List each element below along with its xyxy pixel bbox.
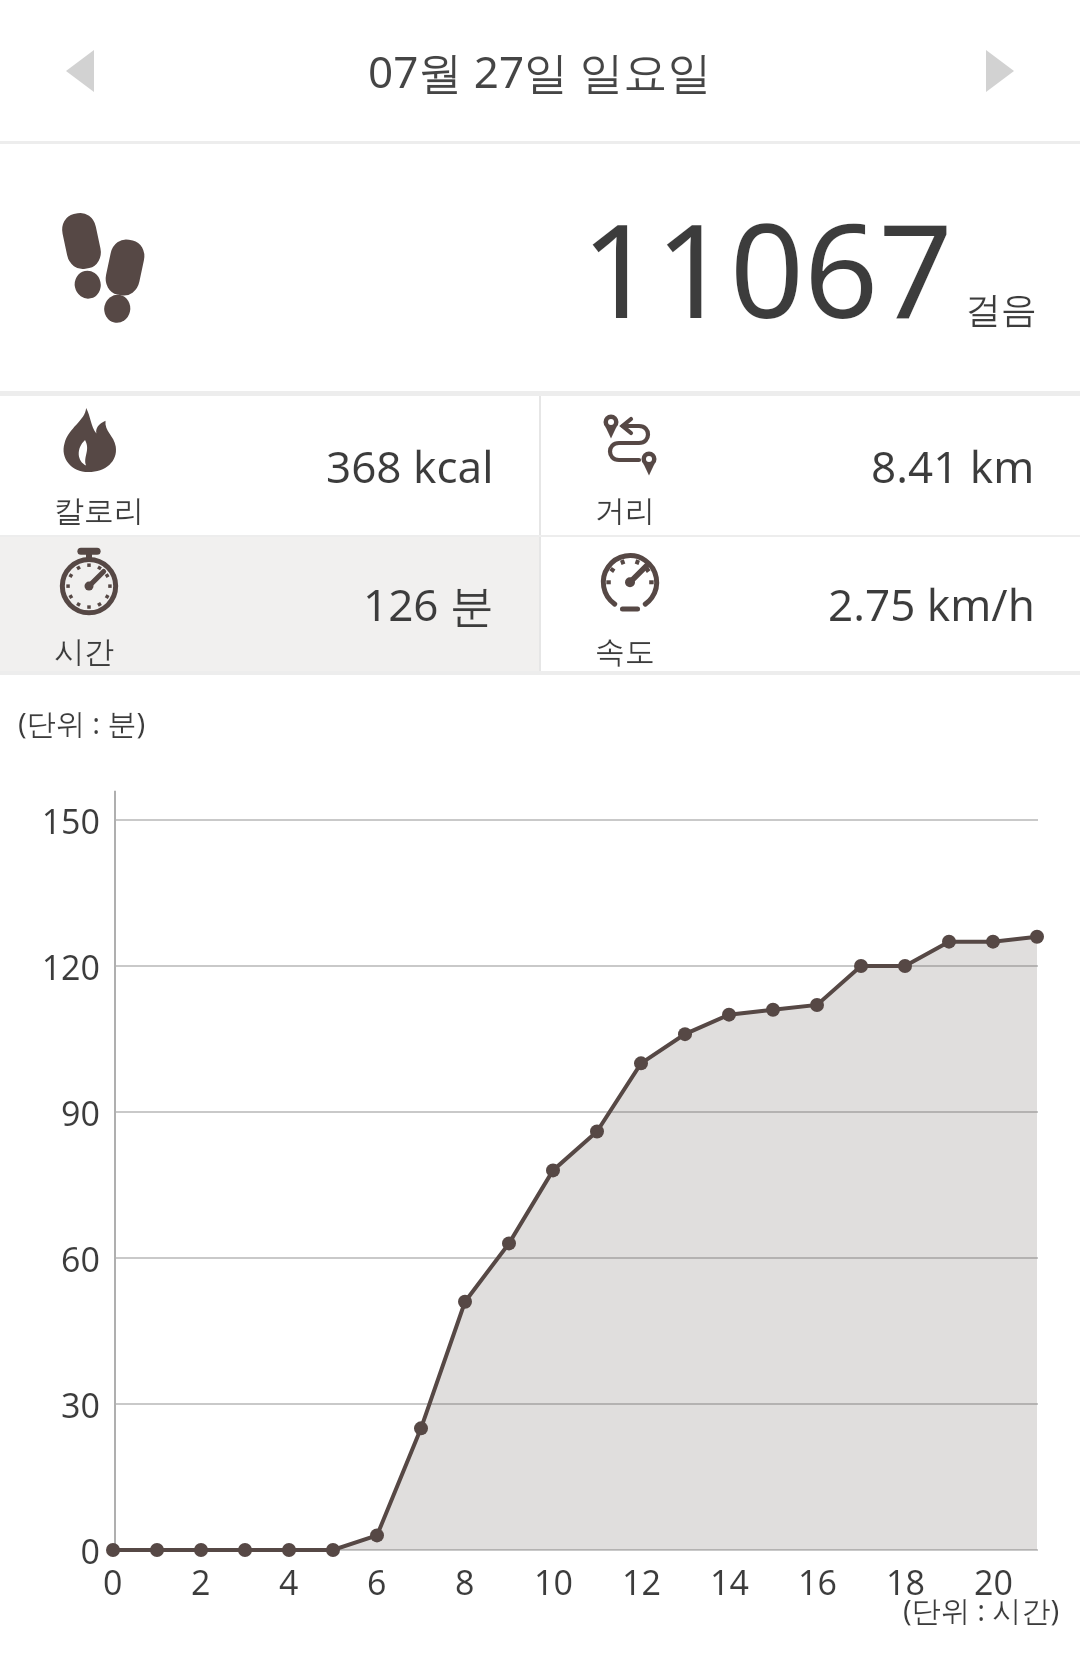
staticText: 6 [367,1559,387,1605]
button[interactable]: 속도 [541,537,1080,671]
staticText: 30 [61,1382,100,1428]
staticText: 18 [886,1559,925,1605]
button[interactable] [50,41,110,101]
staticText: 16 [798,1559,837,1605]
staticText: 0 [80,1528,100,1574]
staticText: 걸음 [965,287,1037,332]
staticText: 150 [41,798,100,844]
staticText: 90 [61,1090,100,1136]
staticText: 126 분 [363,574,494,634]
staticText: 0 [103,1559,123,1605]
staticText: 8.41 km [871,436,1035,496]
staticText: (단위 : 시간) [903,1590,1060,1630]
staticText: 속도 [595,633,655,671]
staticText: 14 [710,1559,749,1605]
staticText: 10 [534,1559,573,1605]
staticText: 11067 [581,179,953,356]
staticText: (단위 : 분) [18,703,146,743]
staticText: 368 kcal [326,436,494,496]
button[interactable]: 시간 [0,537,539,671]
staticText: 60 [61,1236,100,1282]
button[interactable]: 거리 [541,396,1080,535]
staticText: 8 [455,1559,475,1605]
staticText: 4 [279,1559,299,1605]
staticText: 칼로리 [54,492,144,530]
staticText: 2 [191,1559,211,1605]
button[interactable]: 칼로리 [0,396,539,535]
staticText: 시간 [54,633,114,671]
staticText: 120 [41,944,100,990]
staticText: 12 [622,1559,661,1605]
staticText: 거리 [595,492,655,530]
button[interactable] [970,41,1030,101]
staticText: 07월 27일 일요일 [368,41,712,101]
staticText: 20 [974,1559,1013,1605]
staticText: 2.75 km/h [828,574,1035,634]
